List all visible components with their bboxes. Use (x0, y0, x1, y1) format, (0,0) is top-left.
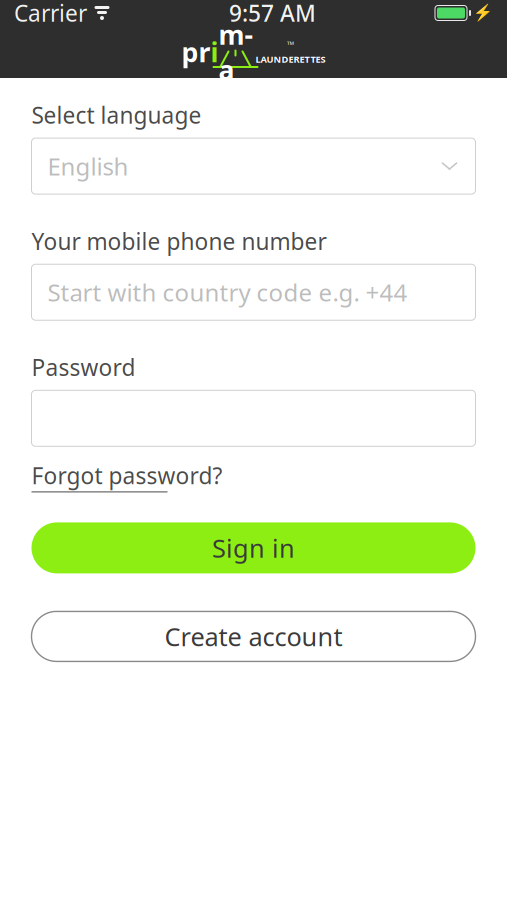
staticText: LAUNDERETTES (255, 53, 325, 65)
staticText: Password (31, 352, 135, 382)
staticText: ⚡ (473, 4, 493, 22)
staticText: Carrier (14, 0, 87, 28)
staticText: ™ (287, 39, 294, 51)
button[interactable]: Forgot password? (31, 460, 222, 492)
button[interactable]: English (31, 138, 475, 194)
staticText: 9:57 AM (229, 0, 316, 28)
staticText: Your mobile phone number (31, 226, 326, 256)
staticText: Sign in (212, 531, 295, 565)
staticText: Create account (164, 620, 342, 653)
staticText: Start with country code e.g. +44 (47, 276, 407, 308)
staticText: Forgot password? (31, 460, 222, 490)
staticText: English (47, 150, 128, 182)
staticText: i (210, 34, 218, 70)
staticText: pr (181, 34, 210, 70)
button[interactable]: Create account (31, 611, 475, 661)
button[interactable]: Sign in (31, 522, 475, 573)
button[interactable]: Start with country code e.g. +44 (31, 264, 475, 320)
staticText: ma (218, 17, 253, 87)
staticText: Select language (31, 100, 201, 130)
button[interactable] (31, 390, 475, 446)
